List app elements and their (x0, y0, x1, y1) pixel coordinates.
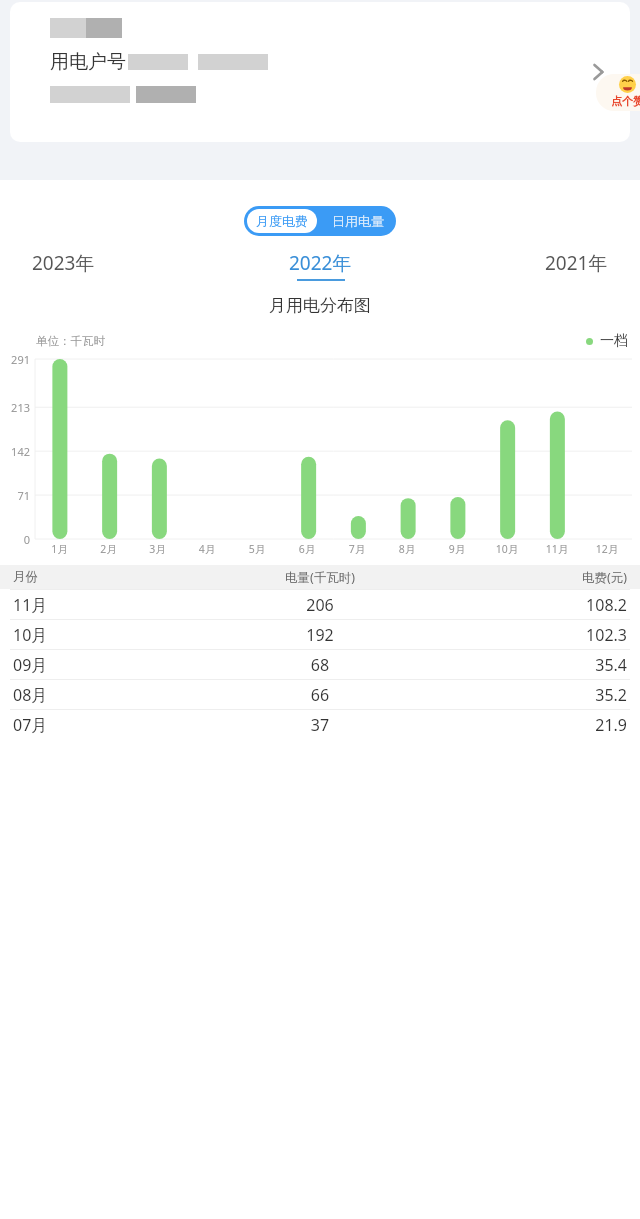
staticText: 37 (200, 714, 440, 736)
staticText: 一档 (600, 332, 628, 350)
staticText: 2021年 (545, 250, 608, 276)
staticText: 电量(千瓦时) (200, 569, 440, 586)
staticText: 点个赞 (611, 94, 640, 108)
staticText: 11月 (532, 542, 582, 556)
staticText: 2月 (84, 542, 133, 556)
staticText: 日用电量 (332, 213, 384, 229)
button[interactable]: 10月 (0, 620, 640, 649)
staticText: 6月 (282, 542, 332, 556)
staticText: 8月 (382, 542, 432, 556)
staticText: 192 (200, 624, 440, 646)
staticText: 35.4 (440, 654, 627, 676)
button[interactable]: 月度电费 (247, 209, 317, 233)
staticText: 35.2 (440, 684, 627, 706)
staticText: 10月 (482, 542, 532, 556)
staticText: 9月 (432, 542, 482, 556)
staticText: 3月 (133, 542, 182, 556)
button[interactable]: 点个赞 (596, 74, 640, 111)
staticText: 单位：千瓦时 (36, 334, 105, 348)
staticText: 11月 (13, 594, 200, 616)
staticText: 142 (0, 444, 30, 459)
staticText: 4月 (182, 542, 232, 556)
button[interactable]: 2022年 (283, 250, 358, 281)
button[interactable]: 2021年 (539, 250, 614, 281)
staticText: 102.3 (440, 624, 627, 646)
staticText: 21.9 (440, 714, 627, 736)
staticText: 66 (200, 684, 440, 706)
staticText: 213 (0, 400, 30, 415)
staticText: 1月 (35, 542, 84, 556)
staticText: 月度电费 (256, 213, 308, 229)
button[interactable]: 08月 (0, 680, 640, 709)
staticText: 12月 (582, 542, 632, 556)
staticText: 68 (200, 654, 440, 676)
button[interactable]: 用电户号 (10, 2, 630, 142)
button[interactable]: 日用电量 (320, 206, 396, 236)
staticText: 2023年 (32, 250, 95, 276)
staticText: 71 (0, 488, 30, 503)
staticText: 108.2 (440, 594, 627, 616)
button[interactable]: 11月 (0, 590, 640, 619)
button[interactable]: 09月 (0, 650, 640, 679)
staticText: 07月 (13, 714, 200, 736)
button[interactable]: Account details (578, 52, 618, 92)
staticText: 5月 (232, 542, 282, 556)
staticText: 用电户号 (50, 50, 126, 74)
staticText: 09月 (13, 654, 200, 676)
staticText: 电费(元) (440, 569, 627, 586)
button[interactable]: 2023年 (26, 250, 101, 281)
staticText: 月用电分布图 (269, 295, 371, 316)
staticText: 291 (0, 352, 30, 367)
staticText: 08月 (13, 684, 200, 706)
staticText: 206 (200, 594, 440, 616)
button[interactable]: 07月 (0, 710, 640, 739)
staticText: 10月 (13, 624, 200, 646)
staticText: 月份 (13, 569, 200, 585)
staticText: 0 (0, 532, 30, 547)
staticText: 7月 (332, 542, 382, 556)
staticText: 2022年 (289, 250, 352, 276)
